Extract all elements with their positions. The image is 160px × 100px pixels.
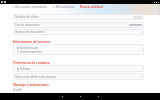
staticText: Servicio nuevo <box>20 46 39 50</box>
button[interactable]: Home <box>78 94 83 99</box>
button[interactable]: Numero de telefono de contacto <box>13 73 144 80</box>
button[interactable]: Mis servicios contratados <box>12 5 47 9</box>
button[interactable]: Nombre del cliente <box>13 14 144 20</box>
staticText: Nueva solicitud <box>80 5 104 9</box>
button[interactable]: Telefono <box>17 67 31 71</box>
button[interactable]: Mis solicitudes <box>53 5 75 9</box>
staticText: Mis servicios contratados <box>15 5 47 9</box>
button[interactable]: Back <box>60 94 65 99</box>
button[interactable]: Recents <box>96 94 101 99</box>
staticText: Mis solicitudes <box>56 5 75 9</box>
staticText: Informacion del servicio <box>13 40 51 44</box>
button[interactable]: Mensaje o aclaraciones <box>13 83 49 87</box>
staticText: Detalle <box>13 88 22 92</box>
button[interactable]: Informacion del servicio <box>13 40 51 44</box>
staticText: Tipo de documento <box>15 23 40 27</box>
button[interactable]: Tipo de documento <box>13 22 144 28</box>
staticText: Telefono <box>20 67 31 71</box>
button[interactable]: Servicio existente <box>17 50 42 54</box>
staticText: Preferencia de contacto <box>13 61 50 65</box>
button[interactable]: Nueva solicitud <box>80 5 104 9</box>
staticText: Mensaje o aclaraciones <box>13 83 49 87</box>
staticText: Numero de documento <box>15 30 45 34</box>
staticText: Servicio existente <box>20 50 42 54</box>
button[interactable]: Preferencia de contacto <box>13 61 50 65</box>
staticText: Numero de telefono de contacto <box>15 75 57 79</box>
button[interactable]: Servicio nuevo <box>17 46 39 50</box>
staticText: Nombre del cliente <box>15 15 40 19</box>
button[interactable]: Numero de documento <box>13 29 144 35</box>
